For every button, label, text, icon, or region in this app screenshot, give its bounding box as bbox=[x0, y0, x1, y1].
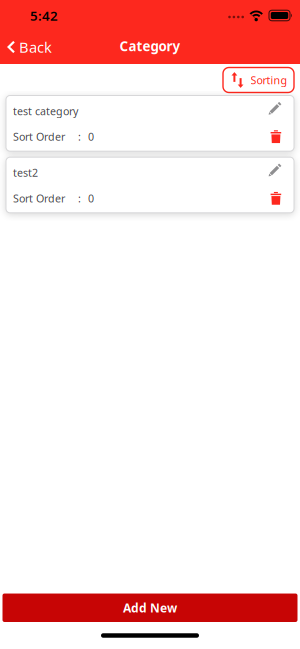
staticText: Category bbox=[119, 37, 180, 55]
staticText: Sort Order bbox=[13, 129, 65, 144]
staticText: 0 bbox=[88, 191, 94, 205]
button[interactable]: Add New bbox=[2, 593, 297, 622]
staticText: 5:42 bbox=[30, 7, 58, 24]
button[interactable]: Edit bbox=[267, 100, 282, 115]
staticText: Back bbox=[19, 37, 52, 57]
staticText: test category bbox=[13, 104, 78, 118]
staticText: : bbox=[78, 129, 81, 144]
button[interactable]: Delete bbox=[270, 192, 282, 205]
staticText: : bbox=[78, 191, 81, 205]
button[interactable]: Edit bbox=[267, 162, 282, 177]
staticText: Add New bbox=[123, 600, 177, 616]
staticText: Sorting bbox=[250, 73, 287, 87]
button[interactable]: Sorting bbox=[223, 67, 294, 92]
staticText: 0 bbox=[88, 129, 94, 144]
button[interactable]: Back bbox=[0, 37, 52, 57]
button[interactable]: Delete bbox=[270, 130, 282, 143]
staticText: Sort Order bbox=[13, 191, 65, 205]
staticText: test2 bbox=[13, 166, 38, 180]
